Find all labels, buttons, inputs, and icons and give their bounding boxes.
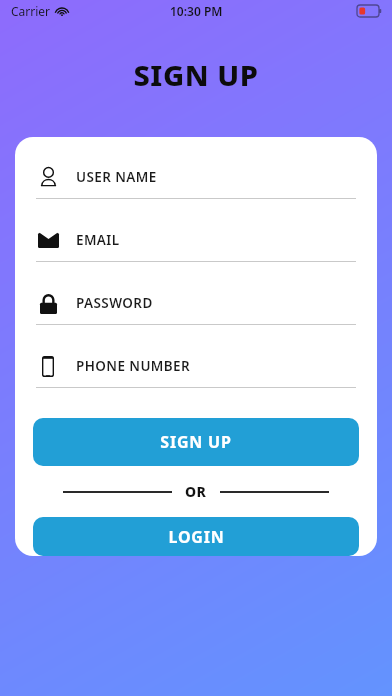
button[interactable]: EMAIL	[15, 219, 377, 282]
staticText: EMAIL	[76, 231, 120, 249]
staticText: SIGN UP	[133, 55, 259, 94]
button[interactable]: SIGN UP	[33, 418, 359, 466]
staticText: USER NAME	[76, 168, 157, 186]
button[interactable]: PHONE NUMBER	[15, 345, 377, 408]
button[interactable]: LOGIN	[33, 517, 359, 556]
staticText: LOGIN	[168, 526, 225, 548]
staticText: SIGN UP	[160, 431, 232, 453]
staticText: PASSWORD	[76, 294, 153, 312]
staticText: Carrier	[11, 3, 51, 19]
staticText: PHONE NUMBER	[76, 357, 191, 375]
button[interactable]: USER NAME	[15, 156, 377, 219]
button[interactable]: PASSWORD	[15, 282, 377, 345]
staticText: 10:30 PM	[170, 3, 223, 19]
staticText: OR	[185, 482, 207, 501]
